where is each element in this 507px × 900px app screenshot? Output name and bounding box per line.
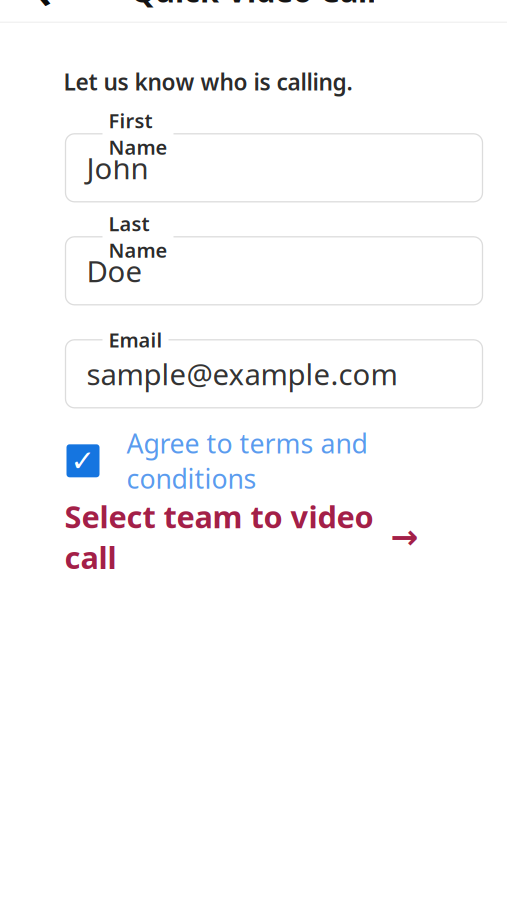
staticText: Select team to video call bbox=[64, 496, 373, 577]
staticText: ‹ bbox=[35, 0, 52, 21]
button[interactable]: Select team to video call bbox=[64, 515, 444, 559]
button[interactable]: Back bbox=[20, 0, 68, 15]
staticText: Email bbox=[108, 326, 162, 353]
staticText: Agree to terms and conditions bbox=[126, 425, 367, 496]
staticText: ✓ bbox=[70, 444, 95, 477]
staticText: sample@example.com bbox=[86, 354, 397, 393]
button[interactable]: ✓ bbox=[66, 439, 486, 483]
staticText: → bbox=[390, 518, 418, 556]
staticText: Last Name bbox=[108, 210, 167, 263]
staticText: First Name bbox=[108, 107, 167, 160]
staticText: Doe bbox=[86, 251, 142, 290]
staticText: John bbox=[86, 148, 148, 187]
staticText: Quick Video Call bbox=[131, 0, 376, 11]
staticText: Let us know who is calling. bbox=[63, 67, 352, 97]
